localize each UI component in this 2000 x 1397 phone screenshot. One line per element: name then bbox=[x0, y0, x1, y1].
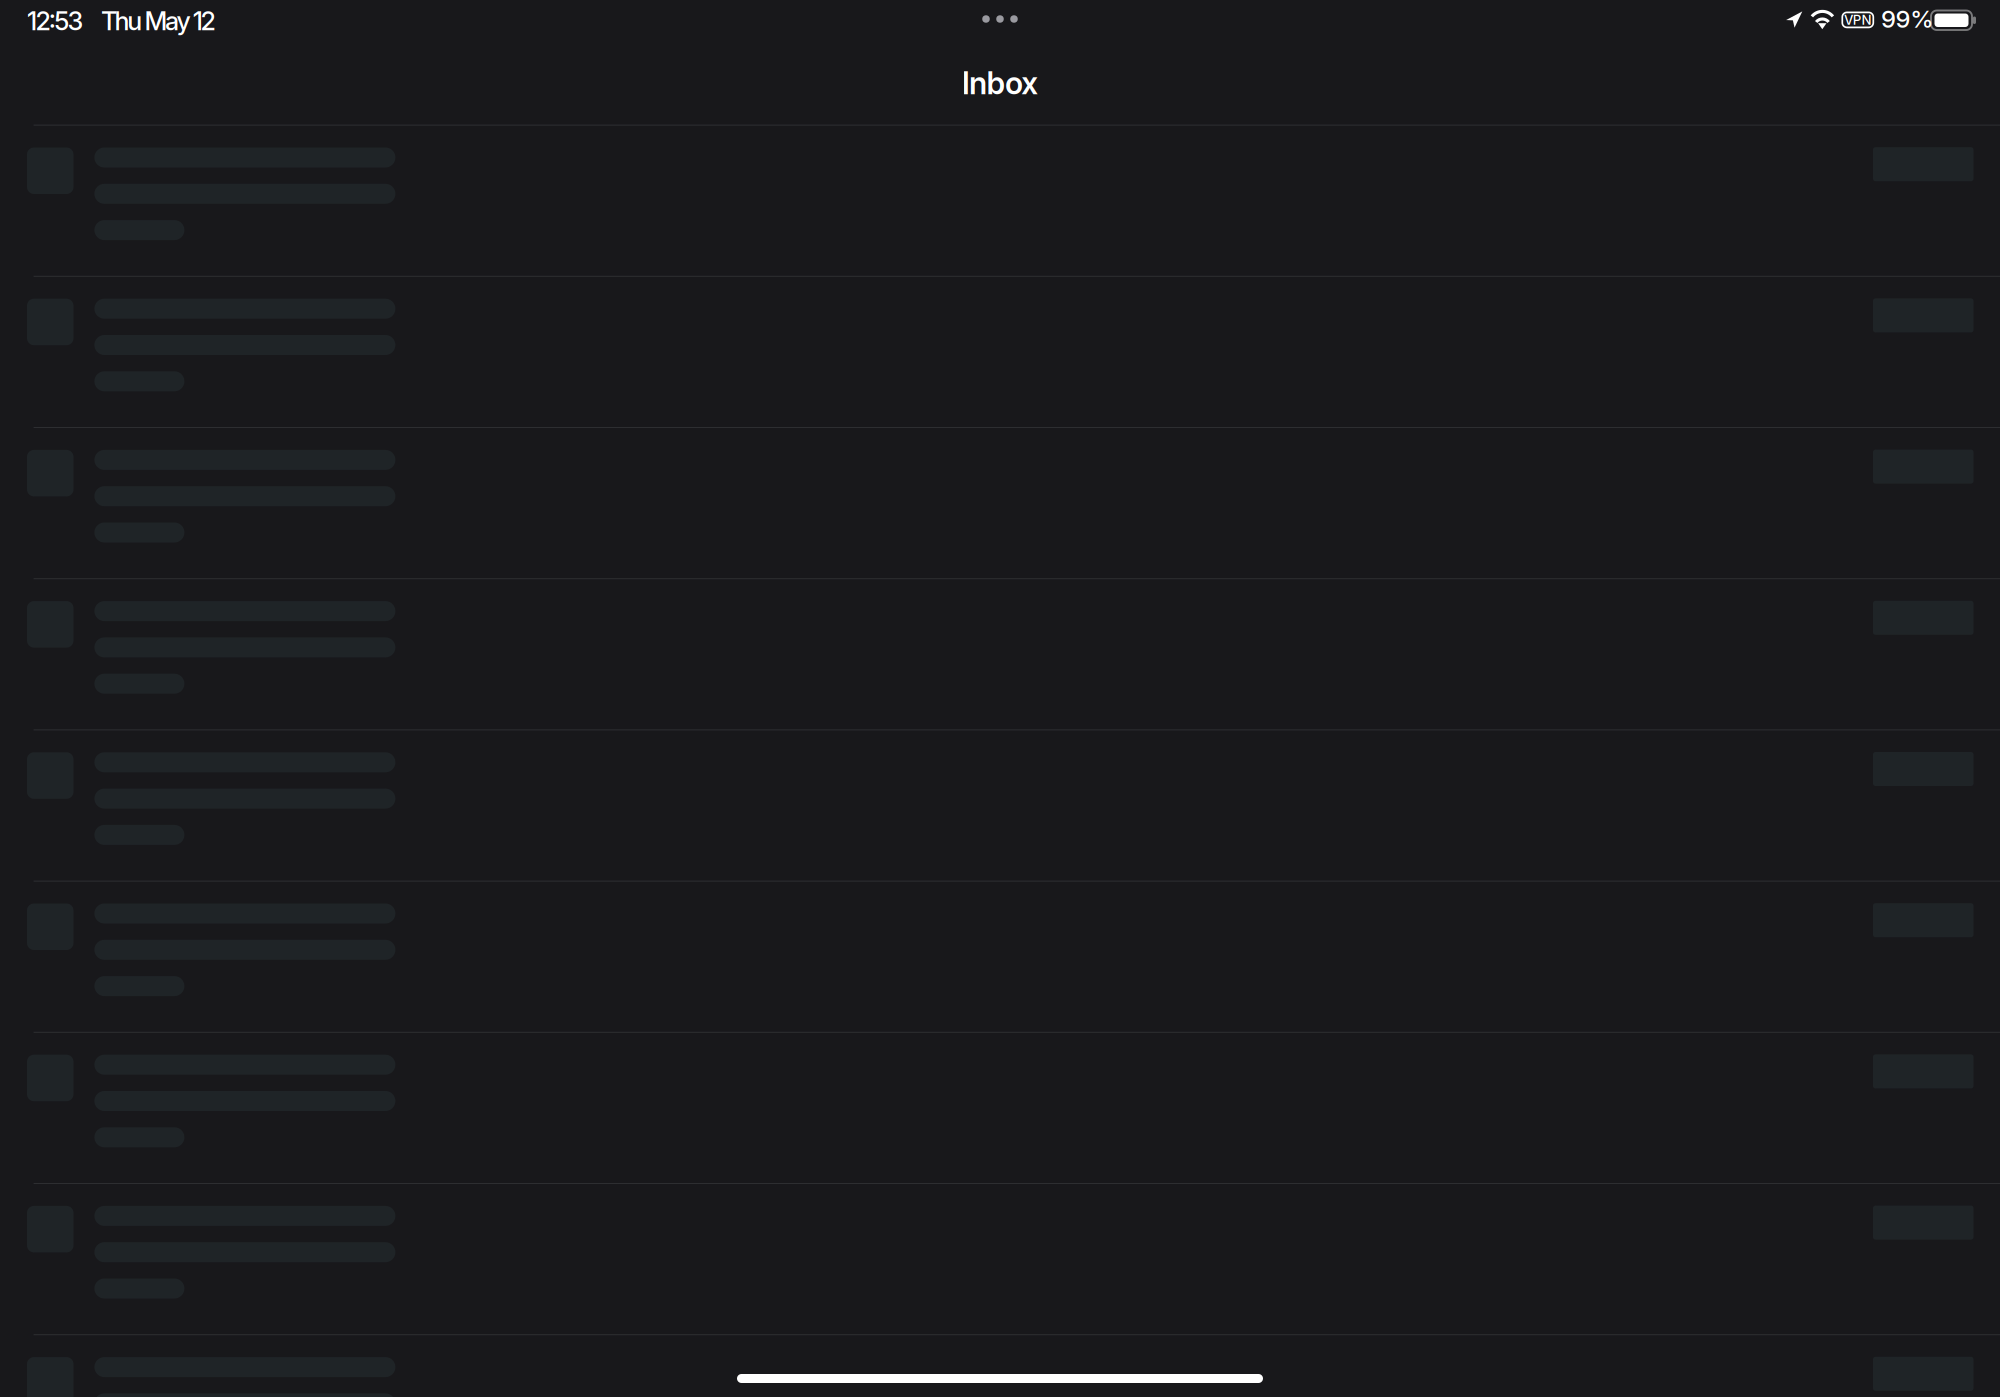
button[interactable]: Multitasking controls bbox=[940, 5, 1060, 33]
staticText: 99% bbox=[1881, 4, 1933, 33]
button[interactable]: Loading message bbox=[0, 1032, 2000, 1183]
button[interactable]: Loading message bbox=[0, 881, 2000, 1032]
button[interactable]: Loading message bbox=[0, 1183, 2000, 1334]
button[interactable]: Loading message bbox=[0, 1334, 2000, 1397]
staticText: Thu May 12 bbox=[101, 6, 215, 36]
staticText: Inbox bbox=[962, 64, 1038, 101]
button[interactable]: Loading message bbox=[0, 427, 2000, 578]
button[interactable]: Loading message bbox=[0, 125, 2000, 276]
button[interactable]: Loading message bbox=[0, 578, 2000, 729]
button[interactable]: Loading message bbox=[0, 729, 2000, 881]
staticText: VPN bbox=[1844, 12, 1872, 28]
button[interactable]: Loading message bbox=[0, 276, 2000, 427]
staticText: 12:53 bbox=[27, 6, 84, 36]
